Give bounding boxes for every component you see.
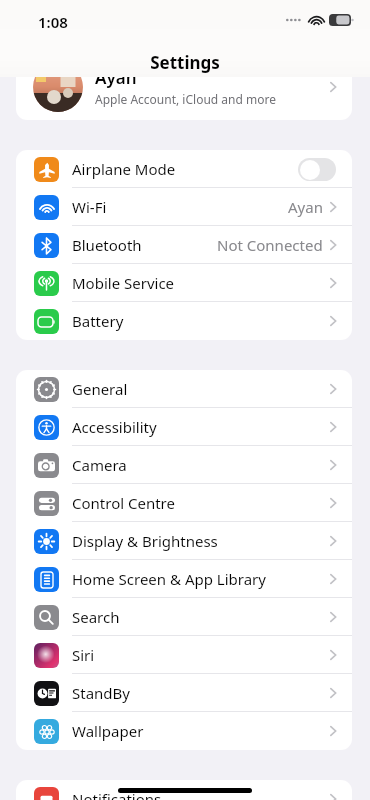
button[interactable]: Ayan <box>16 53 352 120</box>
staticText: Home Screen & App Library <box>72 569 266 589</box>
staticText: Airplane Mode <box>72 159 176 179</box>
button[interactable]: Airplane Mode toggle <box>298 158 336 181</box>
staticText: Notifications <box>72 789 162 800</box>
staticText: Wi-Fi <box>72 197 107 217</box>
staticText: Settings <box>0 51 370 74</box>
staticText: Camera <box>72 455 127 475</box>
staticText: Ayan <box>288 197 323 217</box>
button[interactable]: Camera <box>16 446 352 484</box>
button[interactable]: Home Screen & App Library <box>16 560 352 598</box>
staticText: Ayan <box>95 66 137 89</box>
staticText: Bluetooth <box>72 235 142 255</box>
button[interactable]: Accessibility <box>16 408 352 446</box>
button[interactable]: Mobile Service <box>16 264 352 302</box>
button[interactable]: Wi-Fi <box>16 188 352 226</box>
staticText: General <box>72 379 128 399</box>
button[interactable]: General <box>16 370 352 408</box>
staticText: Control Centre <box>72 493 175 513</box>
button[interactable]: Display & Brightness <box>16 522 352 560</box>
staticText: Accessibility <box>72 417 157 437</box>
staticText: Mobile Service <box>72 273 175 293</box>
button[interactable]: Bluetooth <box>16 226 352 264</box>
staticText: Wallpaper <box>72 721 144 741</box>
staticText: StandBy <box>72 683 130 703</box>
staticText: Display & Brightness <box>72 531 218 551</box>
button[interactable]: Siri <box>16 636 352 674</box>
button[interactable]: Notifications <box>16 780 352 800</box>
button[interactable]: Airplane Mode <box>16 150 352 188</box>
button[interactable]: Search <box>16 598 352 636</box>
staticText: Not Connected <box>217 235 323 255</box>
button[interactable]: Wallpaper <box>16 712 352 750</box>
button[interactable]: Battery <box>16 302 352 340</box>
staticText: 1:08 <box>38 12 68 32</box>
staticText: Search <box>72 607 120 627</box>
staticText: Battery <box>72 311 124 331</box>
button[interactable]: StandBy <box>16 674 352 712</box>
button[interactable]: Control Centre <box>16 484 352 522</box>
staticText: Apple Account, iCloud and more <box>95 91 276 107</box>
staticText: Siri <box>72 645 95 665</box>
